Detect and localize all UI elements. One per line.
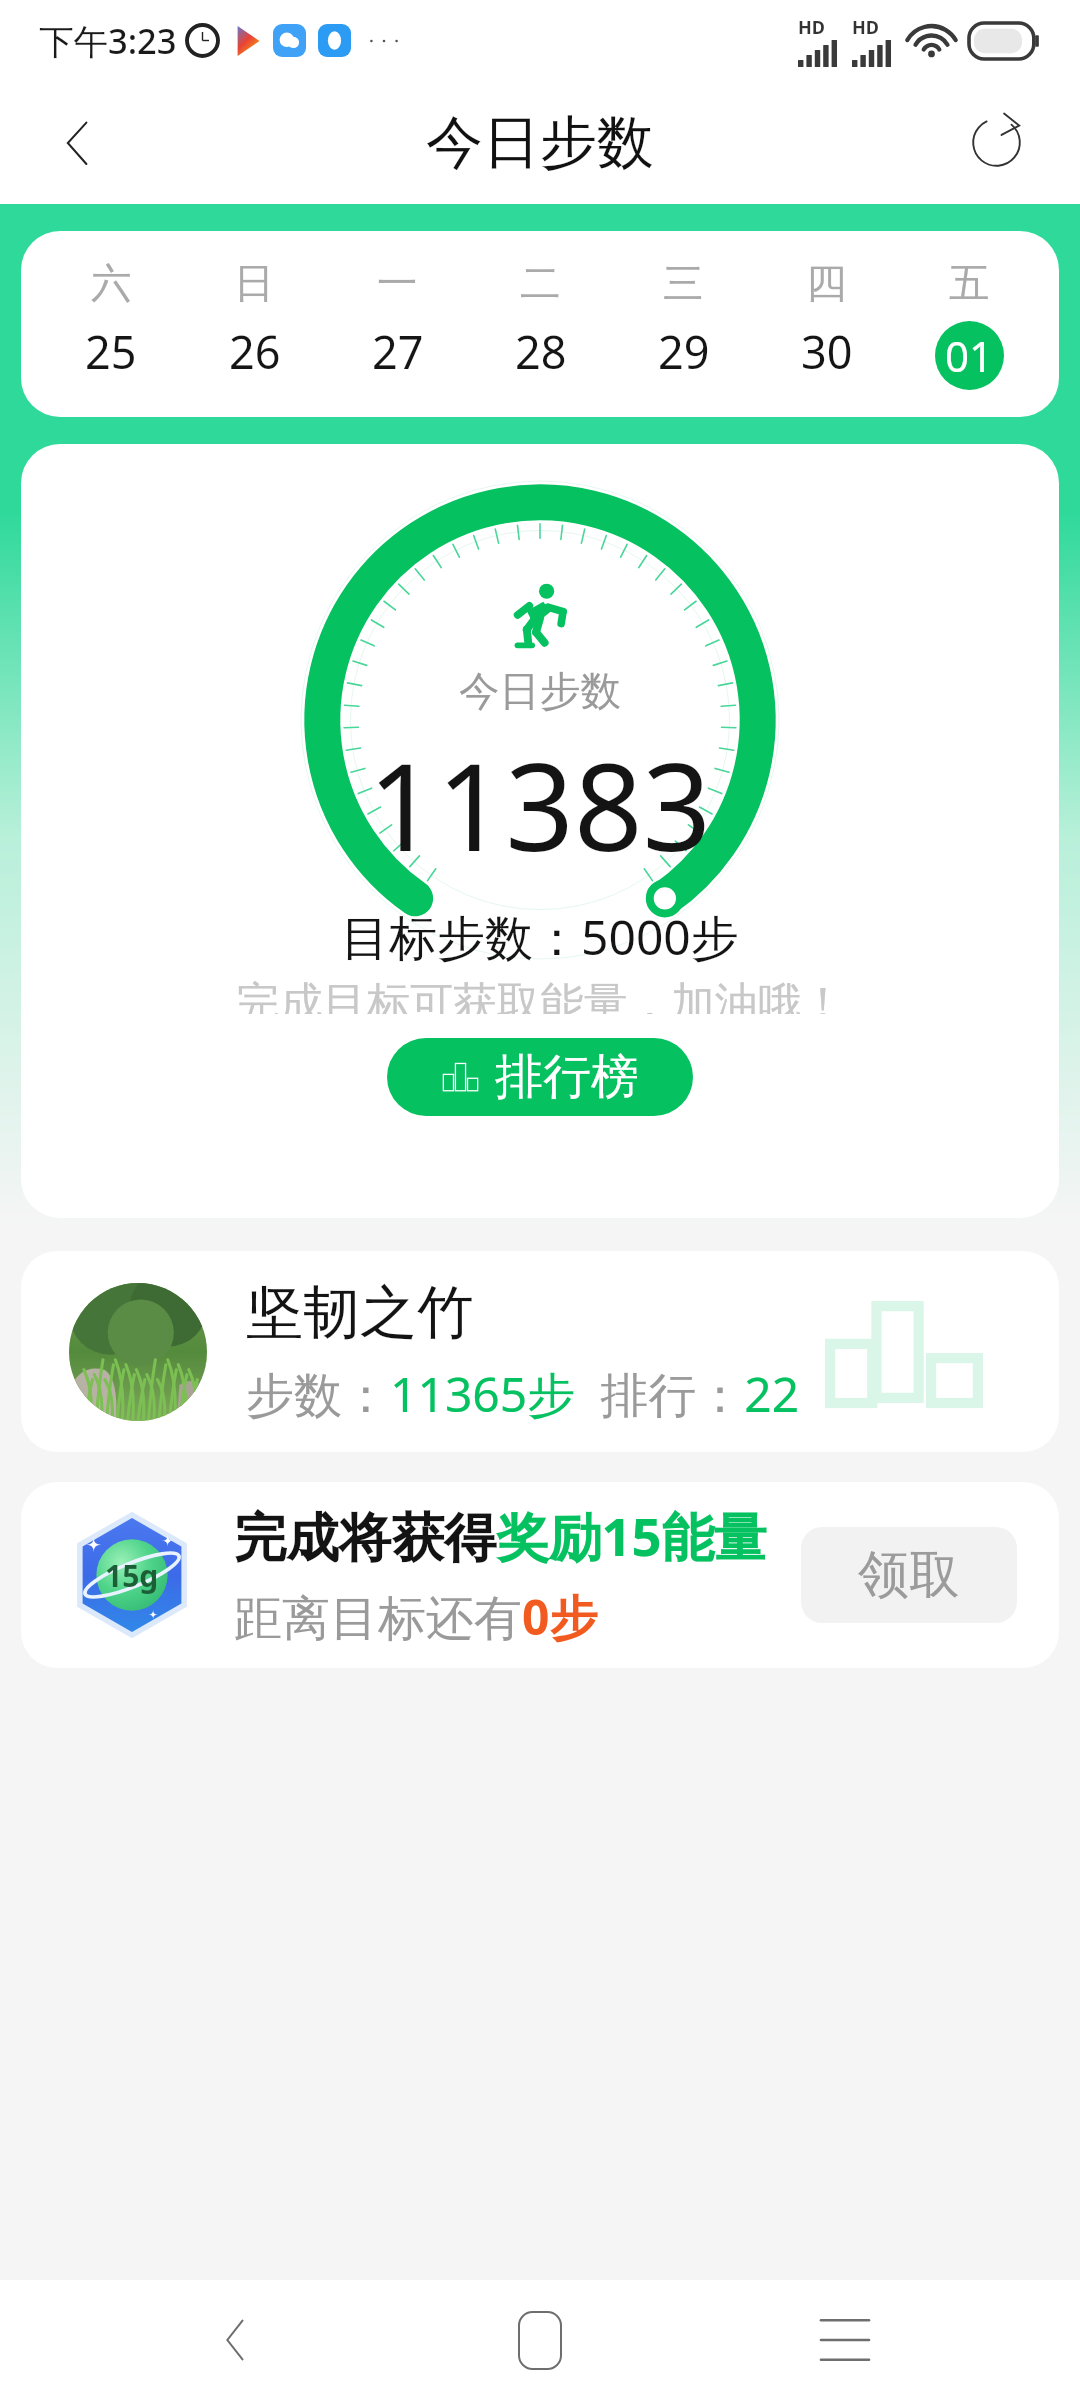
button[interactable]: 最近任务	[776, 2280, 914, 2400]
staticText: HD	[852, 15, 879, 40]
staticText: 今日步数	[459, 666, 621, 717]
staticText: 今日步数	[426, 107, 654, 179]
staticText: 距离目标还有0步	[234, 1584, 598, 1650]
staticText: 01	[945, 327, 994, 384]
button[interactable]: 分享	[930, 81, 1062, 204]
button[interactable]: 六	[21, 231, 1059, 417]
button[interactable]: 主页	[471, 2280, 609, 2400]
staticText: 完成将获得奖励15能量	[234, 1500, 767, 1572]
staticText: 29	[658, 321, 710, 382]
staticText: 三	[663, 258, 704, 309]
staticText: 11383	[368, 723, 712, 886]
staticText: 25	[85, 321, 137, 382]
staticText: 30	[801, 321, 853, 382]
button[interactable]: 返回	[12, 81, 144, 204]
staticText: 坚韧之竹	[246, 1277, 474, 1349]
staticText: HD	[798, 15, 825, 40]
staticText: 日	[234, 258, 275, 309]
staticText: 五	[949, 258, 990, 309]
staticText: 步数：11365步 排行：22	[246, 1361, 800, 1427]
staticText: 二	[520, 258, 561, 309]
staticText: 28	[515, 321, 567, 382]
button[interactable]: 领取	[801, 1527, 1017, 1623]
staticText: 15g	[105, 1555, 159, 1596]
staticText: 一	[377, 258, 418, 309]
button[interactable]: 返回	[167, 2280, 305, 2400]
button[interactable]: 坚韧之竹	[21, 1251, 1059, 1452]
staticText: 四	[806, 258, 847, 309]
staticText: 26	[229, 321, 281, 382]
staticText: 排行榜	[495, 1047, 639, 1107]
button[interactable]: 排行榜	[387, 1038, 693, 1116]
staticText: 目标步数：5000步	[341, 904, 739, 970]
staticText: 下午3:23	[39, 17, 177, 64]
staticText: 领取	[858, 1543, 960, 1607]
staticText: 完成目标可获取能量，加油哦！	[236, 976, 845, 1014]
staticText: 27	[372, 321, 424, 382]
staticText: 六	[91, 258, 132, 309]
